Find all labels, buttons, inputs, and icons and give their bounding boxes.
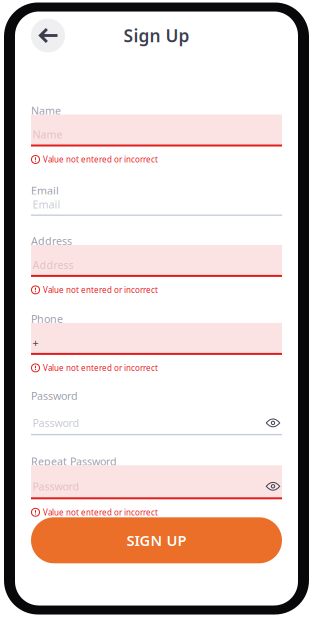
staticText: Repeat Password — [31, 454, 117, 468]
staticText: Password — [32, 416, 79, 430]
staticText: Value not entered or incorrect — [43, 285, 158, 295]
staticText: + — [32, 336, 38, 350]
staticText: Name — [31, 103, 61, 118]
staticText: SIGN UP — [126, 531, 186, 550]
staticText: Address — [31, 234, 72, 248]
staticText: Password — [32, 479, 79, 493]
staticText: Value not entered or incorrect — [43, 154, 158, 165]
button[interactable]: SIGN UP — [31, 517, 282, 563]
staticText: Email — [32, 197, 60, 211]
staticText: Address — [32, 258, 73, 272]
staticText: Password — [31, 389, 78, 403]
staticText: Email — [31, 183, 59, 198]
button[interactable]: Back — [31, 18, 65, 52]
staticText: Phone — [31, 312, 63, 326]
staticText: Name — [32, 127, 62, 141]
staticText: Sign Up — [123, 24, 189, 47]
staticText: Value not entered or incorrect — [43, 507, 158, 518]
staticText: Value not entered or incorrect — [43, 363, 158, 373]
button[interactable]: Show password — [264, 415, 282, 431]
button[interactable]: Show password — [264, 478, 282, 494]
